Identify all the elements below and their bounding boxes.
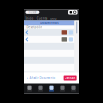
button[interactable] [24, 36, 74, 43]
staticText: Docs [50, 17, 56, 20]
staticText: + Añadir Documento [27, 76, 56, 80]
button[interactable]: CERRAR [64, 75, 79, 80]
staticText: Inicio [25, 17, 33, 20]
button[interactable]: More [68, 84, 79, 93]
button[interactable]: Profile [46, 84, 57, 93]
button[interactable]: Tools [68, 10, 78, 14]
button[interactable]: Bag [35, 84, 46, 93]
staticText: CERRAR [65, 76, 76, 80]
staticText: Cuenta [37, 17, 47, 20]
staticText: buscar [28, 10, 36, 14]
button[interactable]: Home [24, 84, 35, 93]
button[interactable]: + Añadir Documento [24, 76, 56, 80]
button[interactable]: Search [25, 11, 39, 14]
staticText: Descripción [26, 25, 42, 29]
button[interactable] [24, 29, 74, 36]
staticText: Documentos [40, 21, 58, 25]
button[interactable]: Docs [57, 84, 68, 93]
